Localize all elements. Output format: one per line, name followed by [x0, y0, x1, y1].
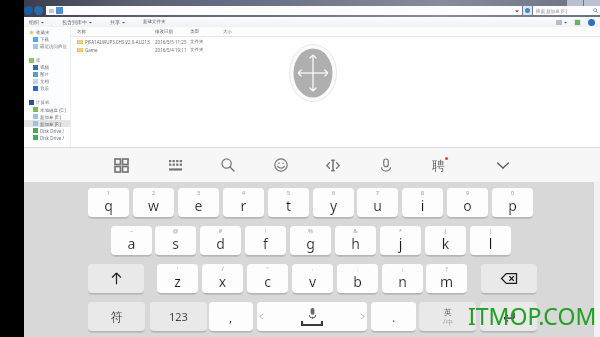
staticText: k	[425, 234, 466, 253]
staticText: Game	[85, 47, 98, 53]
button[interactable]: 收藏夹	[24, 29, 70, 36]
staticText: 0	[492, 189, 533, 197]
staticText: !	[245, 227, 286, 235]
button[interactable]: Keyboard layout	[153, 148, 197, 182]
button[interactable]: Enter	[480, 302, 537, 331]
button[interactable]: !	[245, 226, 286, 255]
button[interactable]: :	[337, 264, 378, 293]
staticText: h	[335, 234, 376, 253]
staticText: ?	[426, 265, 467, 273]
staticText: 英	[444, 307, 452, 317]
button[interactable]: Disk Drive /storag	[24, 127, 70, 134]
button[interactable]: 图片	[24, 71, 70, 78]
button[interactable]: 下载	[24, 36, 70, 43]
button[interactable]: 8	[402, 188, 443, 217]
staticText: ;	[382, 265, 423, 273]
staticText: 文件夹	[190, 47, 204, 53]
button[interactable]: 视频	[24, 64, 70, 71]
button[interactable]: Voice input	[364, 148, 408, 182]
button[interactable]: Space	[257, 302, 367, 331]
staticText: s	[155, 234, 196, 253]
button[interactable]: 新加卷 (E:)	[24, 113, 70, 120]
button[interactable]: Jobs	[416, 148, 460, 182]
staticText: 新加卷 (E:)	[40, 114, 62, 120]
button[interactable]: 1	[88, 188, 129, 217]
button[interactable]: ?	[426, 264, 467, 293]
button[interactable]: *	[380, 226, 421, 255]
button[interactable]: ~	[111, 226, 152, 255]
staticText: 包含到库中	[62, 19, 87, 25]
staticText: p	[492, 196, 533, 215]
staticText: 库	[36, 58, 41, 64]
button[interactable]: )	[470, 226, 511, 255]
button[interactable]: 6	[313, 188, 354, 217]
button[interactable]: '	[157, 264, 198, 293]
staticText: &	[335, 227, 376, 235]
button[interactable]: Shift	[88, 264, 144, 293]
button[interactable]: 文档	[24, 78, 70, 85]
staticText: f	[245, 234, 286, 253]
staticText: 类型	[190, 29, 199, 35]
button[interactable]: Move cursor	[311, 148, 355, 182]
button[interactable]: Move cursor	[289, 44, 337, 102]
button[interactable]: Apps	[99, 148, 143, 182]
button[interactable]: #	[200, 226, 241, 255]
staticText: a	[111, 234, 152, 253]
button[interactable]: Symbols	[88, 302, 145, 331]
staticText: v	[292, 272, 333, 291]
staticText: 收藏夹	[36, 30, 50, 36]
button[interactable]: 计算机	[24, 99, 70, 106]
button[interactable]: 7	[357, 188, 398, 217]
staticText: ,	[229, 309, 233, 325]
button[interactable]: Switch language	[419, 302, 476, 331]
staticText: y	[313, 196, 354, 215]
button[interactable]: Disk Drive /storag	[24, 134, 70, 141]
button[interactable]: PJFA1AI.WUP3.CHS.V2.0-AU213	[71, 38, 600, 46]
staticText: 中	[446, 318, 453, 327]
button[interactable]: ;	[382, 264, 423, 293]
staticText: 大小	[223, 29, 232, 35]
button[interactable]: @	[155, 226, 196, 255]
button[interactable]: &	[335, 226, 376, 255]
button[interactable]: 2	[133, 188, 174, 217]
button[interactable]: 音乐	[24, 85, 70, 92]
button[interactable]: Numbers	[150, 302, 207, 331]
button[interactable]: ·	[292, 264, 333, 293]
button[interactable]: 3	[178, 188, 219, 217]
staticText: 9	[447, 189, 488, 197]
button[interactable]: 5	[268, 188, 309, 217]
button[interactable]: /	[202, 264, 243, 293]
staticText: 7	[357, 189, 398, 197]
staticText: z	[157, 272, 198, 291]
staticText: '	[157, 265, 198, 273]
staticText: PJFA1AI.WUP3.CHS.V2.0-AU213	[85, 39, 150, 45]
button[interactable]: 9	[447, 188, 488, 217]
button[interactable]: 0	[492, 188, 533, 217]
button[interactable]: 4	[223, 188, 264, 217]
button[interactable]: Game	[71, 46, 600, 54]
button[interactable]: Emoji	[259, 148, 303, 182]
button[interactable]: Backspace	[481, 264, 537, 293]
button[interactable]: 新加卷 (F:)	[24, 120, 70, 127]
button[interactable]: Period	[371, 302, 416, 331]
staticText: 图片	[40, 72, 49, 78]
staticText: ·	[292, 265, 333, 273]
button[interactable]: 最近访问的位置	[24, 43, 70, 50]
staticText: /	[443, 317, 446, 327]
button[interactable]: Collapse keyboard	[481, 148, 525, 182]
staticText: 组织	[29, 19, 39, 25]
staticText: /	[202, 265, 243, 273]
staticText: d	[200, 234, 241, 253]
staticText: j	[380, 234, 421, 253]
button[interactable]: (	[425, 226, 466, 255]
staticText: .	[392, 309, 396, 325]
staticText: 123	[169, 309, 188, 324]
button[interactable]: Search	[206, 148, 250, 182]
button[interactable]: 库	[24, 57, 70, 64]
staticText: 新加卷 (F:)	[40, 121, 61, 127]
button[interactable]: %	[290, 226, 331, 255]
button[interactable]: Comma	[209, 302, 253, 331]
staticText: g	[290, 234, 331, 253]
button[interactable]: "	[247, 264, 288, 293]
button[interactable]: 本地磁盘 (C:)	[24, 106, 70, 113]
